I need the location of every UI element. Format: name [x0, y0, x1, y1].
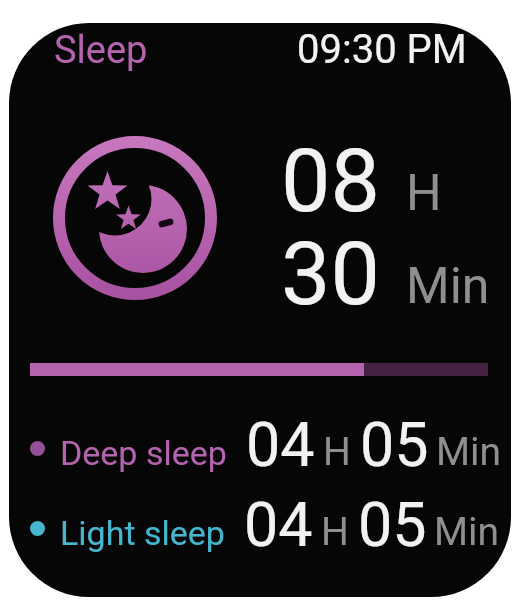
staticText: Deep sleep [60, 433, 227, 473]
button[interactable]: 30 [281, 222, 490, 325]
staticText: 04 [244, 489, 313, 560]
button[interactable]: 09:30 PM [297, 26, 467, 73]
staticText: Light sleep [60, 513, 225, 553]
button[interactable] [45, 128, 225, 308]
staticText: 08 [281, 129, 380, 232]
staticText: 05 [358, 489, 427, 560]
button[interactable]: Light sleep [30, 489, 500, 560]
staticText: H [321, 509, 349, 555]
button[interactable]: 08 [281, 129, 442, 232]
button[interactable] [30, 363, 488, 376]
staticText: 04 [246, 409, 315, 480]
button[interactable]: Sleep [54, 28, 148, 73]
staticText: 30 [281, 222, 380, 325]
staticText: Min [436, 429, 502, 475]
staticText: H [406, 164, 442, 223]
staticText: Min [406, 257, 490, 316]
staticText: 05 [360, 409, 429, 480]
button[interactable]: Deep sleep [30, 409, 502, 480]
staticText: H [323, 429, 351, 475]
staticText: Min [434, 509, 500, 555]
